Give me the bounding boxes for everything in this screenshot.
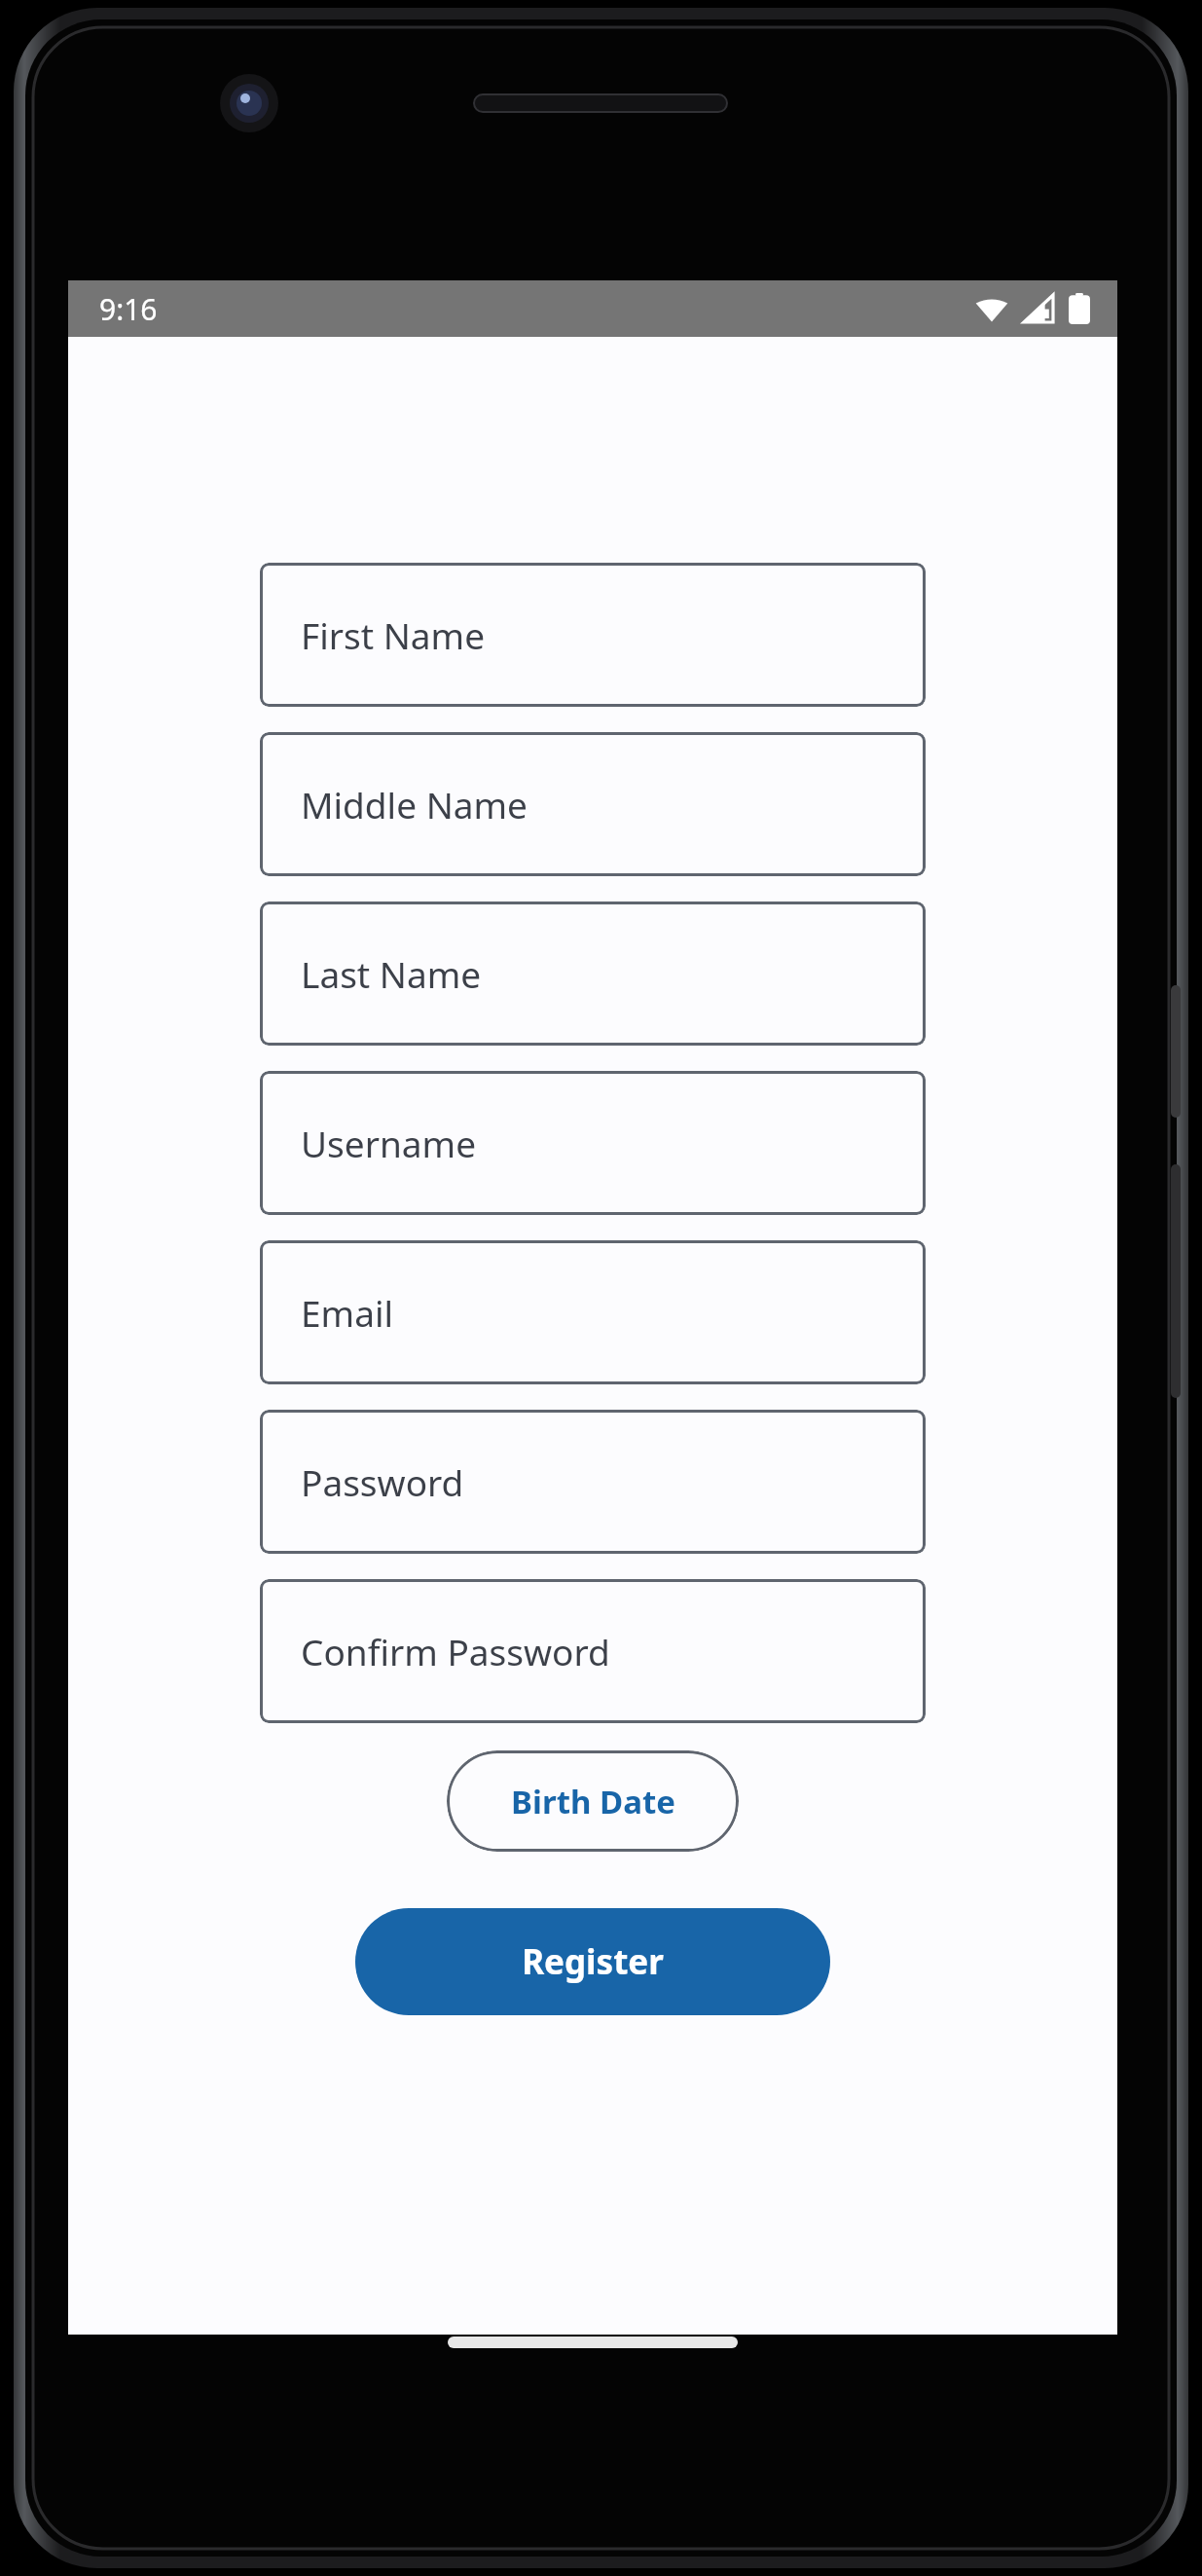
button[interactable]: Middle Name bbox=[260, 732, 926, 876]
staticText: Email bbox=[301, 1288, 394, 1337]
staticText: Register bbox=[522, 1938, 664, 1985]
button[interactable]: Confirm Password bbox=[260, 1579, 926, 1723]
button[interactable]: Last Name bbox=[260, 902, 926, 1046]
button[interactable]: Username bbox=[260, 1071, 926, 1215]
button[interactable]: Password bbox=[260, 1410, 926, 1554]
staticText: First Name bbox=[301, 610, 486, 659]
button[interactable]: Register bbox=[355, 1908, 830, 2015]
button[interactable]: Email bbox=[260, 1240, 926, 1384]
staticText: Confirm Password bbox=[301, 1627, 610, 1675]
staticText: Birth Date bbox=[511, 1780, 675, 1823]
staticText: Last Name bbox=[301, 949, 482, 998]
button[interactable]: First Name bbox=[260, 563, 926, 707]
staticText: Middle Name bbox=[301, 780, 528, 828]
staticText: Password bbox=[301, 1457, 464, 1506]
button[interactable]: Birth Date bbox=[447, 1750, 739, 1852]
staticText: 9:16 bbox=[99, 289, 158, 329]
staticText: Username bbox=[301, 1119, 477, 1167]
